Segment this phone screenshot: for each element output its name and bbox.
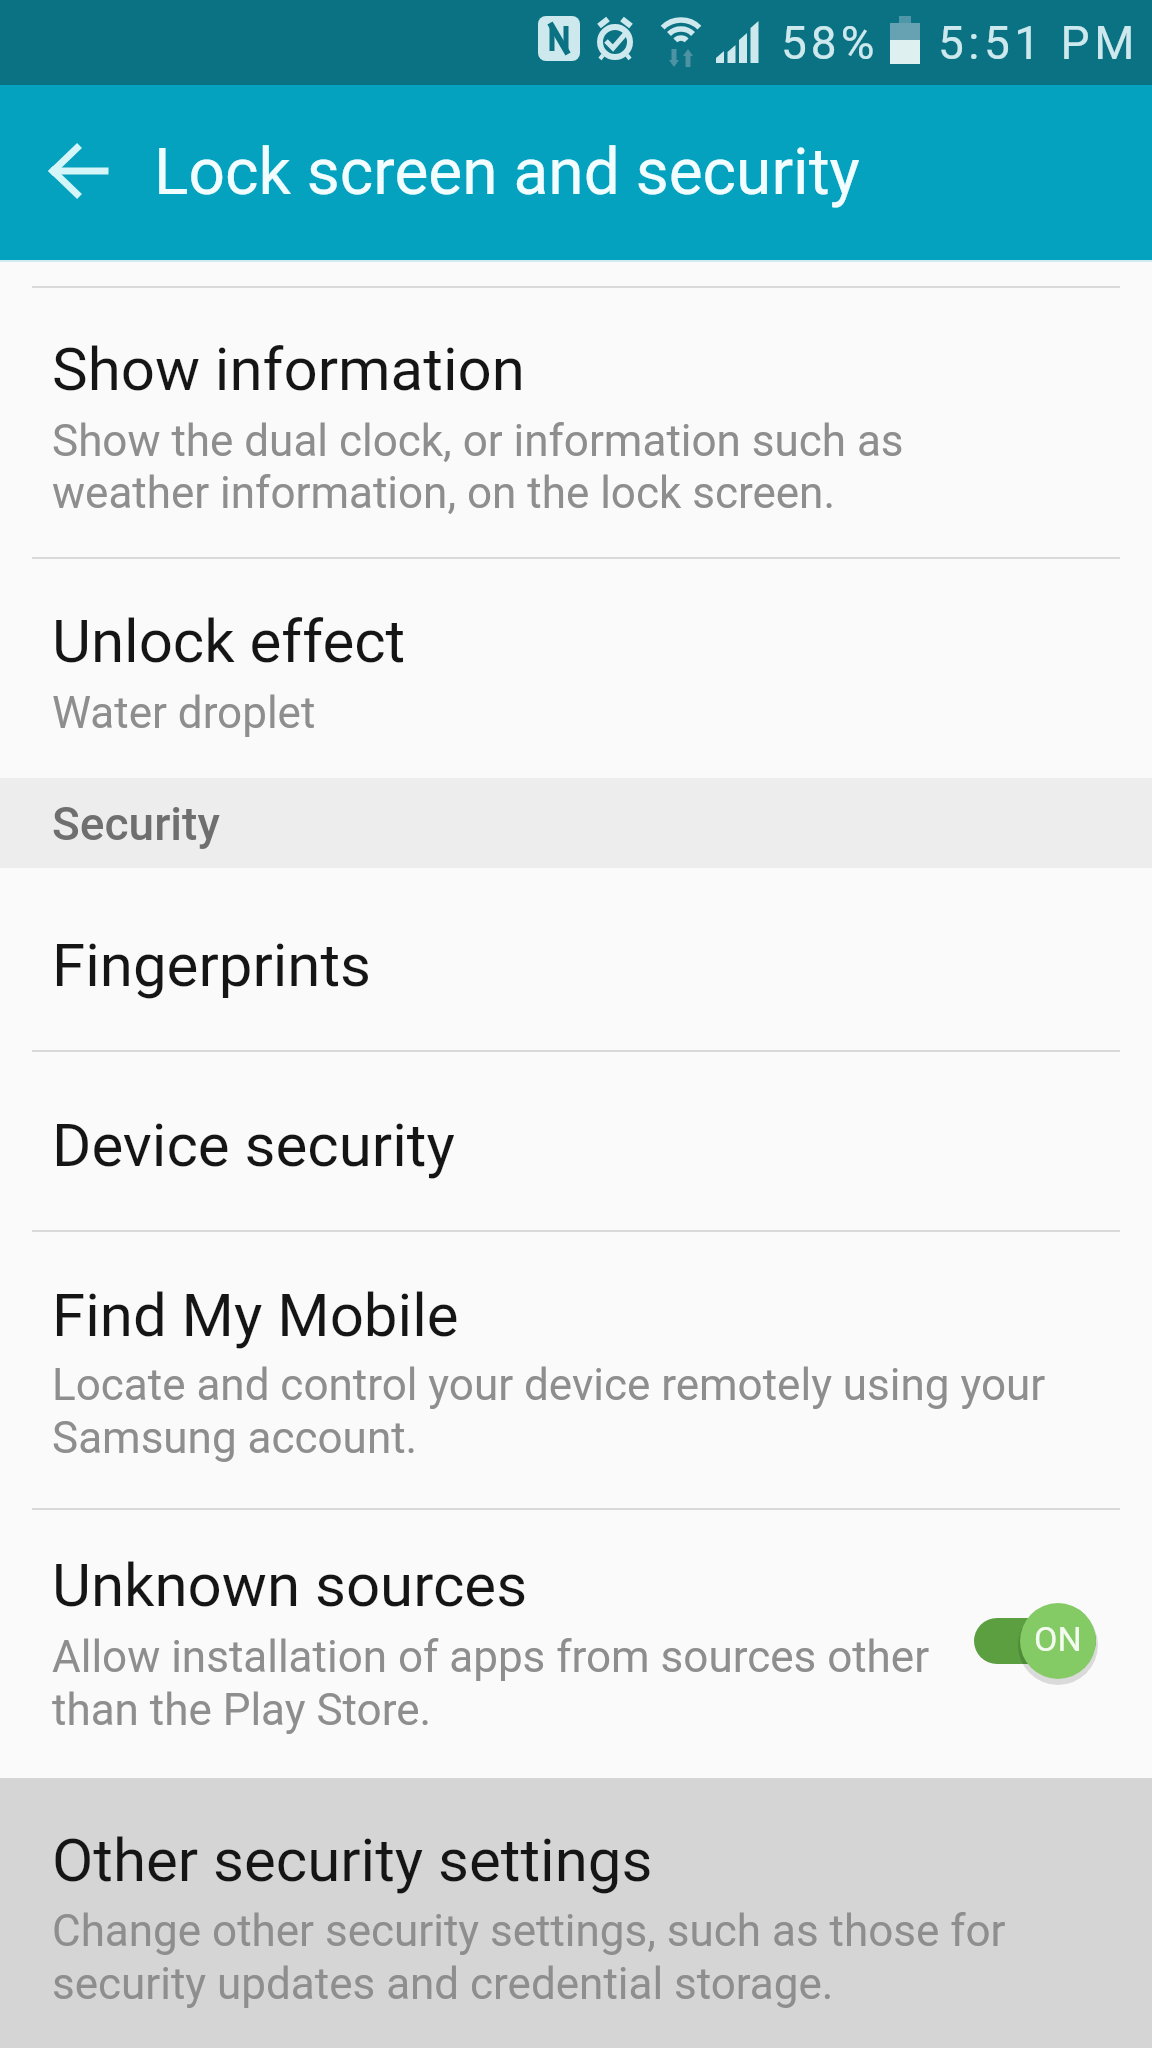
button[interactable] xyxy=(0,868,1152,1050)
staticText: Unknown sources xyxy=(52,1550,528,1620)
staticText: Security xyxy=(52,797,220,851)
button[interactable] xyxy=(0,1510,1152,1778)
staticText: Device security xyxy=(52,1110,455,1180)
staticText: Water droplet xyxy=(52,687,316,739)
button[interactable] xyxy=(0,1232,1152,1508)
staticText: Locate and control your device remotely … xyxy=(52,1359,1046,1411)
staticText: Change other security settings, such as … xyxy=(52,1905,1006,1957)
button[interactable] xyxy=(0,559,1152,778)
staticText: Find My Mobile xyxy=(52,1280,459,1350)
button[interactable] xyxy=(0,293,1152,557)
staticText: Other security settings xyxy=(52,1825,653,1895)
button[interactable] xyxy=(0,1778,1152,2048)
staticText: Unlock effect xyxy=(52,606,406,676)
button[interactable]: ON xyxy=(960,1595,1110,1690)
staticText: security updates and credential storage. xyxy=(52,1958,834,2010)
staticText: ON xyxy=(1034,1619,1082,1659)
staticText: Samsung account. xyxy=(52,1412,418,1464)
staticText: than the Play Store. xyxy=(52,1684,432,1736)
staticText: Fingerprints xyxy=(52,930,372,1000)
staticText: Allow installation of apps from sources … xyxy=(52,1631,930,1683)
staticText: Lock screen and security xyxy=(154,135,860,210)
staticText: weather information, on the lock screen. xyxy=(52,467,836,519)
staticText: Show the dual clock, or information such… xyxy=(52,415,904,467)
staticText: 5:51 PM xyxy=(938,16,1139,70)
button[interactable] xyxy=(24,111,134,231)
button[interactable] xyxy=(0,1052,1152,1230)
staticText: 58% xyxy=(781,16,879,70)
staticText: Show information xyxy=(52,334,525,404)
